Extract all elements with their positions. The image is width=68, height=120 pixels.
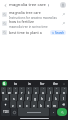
staticText: w: [8, 90, 11, 94]
button[interactable]: .: [50, 108, 56, 116]
button[interactable]: Space: [18, 108, 49, 116]
button[interactable]: a: [2, 94, 9, 101]
staticText: f: [27, 96, 29, 100]
staticText: .: [53, 110, 54, 114]
button[interactable]: Account: [60, 2, 66, 8]
staticText: c: [26, 103, 28, 107]
staticText: G: [3, 82, 6, 86]
staticText: j: [49, 96, 50, 100]
staticText: q: [2, 90, 5, 94]
button[interactable]: the: [49, 80, 62, 87]
staticText: 9: [56, 87, 58, 90]
button[interactable]: for: [36, 80, 49, 87]
button[interactable]: how to fertilize: [0, 19, 68, 28]
button[interactable]: ?123: [1, 108, 10, 116]
staticText: the: [53, 82, 58, 86]
staticText: Search: [55, 31, 64, 35]
button[interactable]: f: [25, 94, 31, 101]
staticText: magnolia tree in spring time: [9, 25, 48, 28]
button[interactable]: z: [10, 101, 16, 108]
button[interactable]: Search: [50, 30, 66, 35]
button[interactable]: 9: [54, 87, 60, 94]
button[interactable]: best time to plant a magnolia: [0, 28, 68, 36]
staticText: a: [5, 96, 7, 100]
button[interactable]: 7: [40, 87, 46, 94]
button[interactable]: Back: [2, 1, 58, 9]
button[interactable]: 0: [61, 87, 67, 94]
button[interactable]: 3: [13, 87, 18, 94]
button[interactable]: l: [60, 94, 66, 101]
staticText: m: [53, 103, 57, 107]
staticText: z: [12, 103, 14, 107]
staticText: best time to plant a magnolia: [9, 30, 48, 35]
staticText: t: [28, 90, 30, 94]
staticText: how to fertilize: [9, 19, 35, 24]
button[interactable]: Backspace: [59, 101, 67, 108]
button[interactable]: 1: [1, 87, 6, 94]
staticText: x: [19, 103, 21, 107]
staticText: 5: [28, 87, 30, 90]
button[interactable]: h: [39, 94, 45, 101]
button[interactable]: in: [23, 80, 36, 87]
button[interactable]: b: [38, 101, 44, 108]
staticText: k: [55, 96, 57, 100]
staticText: i: [50, 90, 51, 94]
button[interactable]: 4: [19, 87, 25, 94]
staticText: s: [13, 96, 15, 100]
button[interactable]: magnolia tree care: [0, 10, 68, 19]
button[interactable]: x: [17, 101, 23, 108]
staticText: h: [41, 96, 44, 100]
staticText: magnolia tree care: [9, 2, 46, 8]
staticText: p: [63, 90, 66, 94]
staticText: v: [33, 103, 35, 107]
button[interactable]: 8: [47, 87, 53, 94]
staticText: b: [40, 103, 43, 107]
button[interactable]: 6: [33, 87, 39, 94]
button[interactable]: More suggestions: [62, 82, 66, 86]
staticText: d: [20, 96, 23, 100]
button[interactable]: 2: [7, 87, 12, 94]
staticText: u: [42, 90, 45, 94]
staticText: 0: [64, 87, 66, 90]
staticText: Instructions for growing magnolias: [9, 16, 57, 19]
button[interactable]: to: [9, 80, 23, 87]
button[interactable]: 5: [26, 87, 32, 94]
staticText: o: [56, 90, 58, 94]
staticText: for: [40, 82, 45, 86]
staticText: ?123: [3, 110, 9, 114]
button[interactable]: Google: [2, 81, 7, 86]
button[interactable]: g: [32, 94, 38, 101]
button[interactable]: Shift: [1, 101, 9, 108]
staticText: 8: [49, 87, 51, 90]
staticText: magnolia tree care: [9, 10, 41, 15]
button[interactable]: m: [52, 101, 58, 108]
staticText: 1: [3, 87, 5, 90]
button[interactable]: Search: [57, 108, 67, 116]
button[interactable]: d: [18, 94, 24, 101]
staticText: l: [63, 96, 64, 100]
button[interactable]: j: [46, 94, 52, 101]
button[interactable]: Emoji: [11, 108, 17, 116]
staticText: r: [21, 90, 23, 94]
staticText: e: [15, 90, 17, 94]
button[interactable]: c: [24, 101, 30, 108]
staticText: to: [14, 82, 18, 86]
button[interactable]: n: [45, 101, 51, 108]
other: Voice search: [47, 4, 50, 7]
staticText: g: [34, 96, 37, 100]
staticText: 6: [35, 87, 37, 90]
button[interactable]: Insert suggestion: [61, 21, 66, 26]
staticText: 4: [21, 87, 23, 90]
staticText: in: [28, 82, 31, 86]
staticText: 2: [9, 87, 11, 90]
button[interactable]: k: [53, 94, 59, 101]
button[interactable]: Insert suggestion: [61, 12, 66, 17]
other: Back: [4, 4, 7, 7]
button[interactable]: s: [10, 94, 17, 101]
staticText: n: [47, 103, 50, 107]
button[interactable]: v: [31, 101, 37, 108]
staticText: 3: [15, 87, 17, 90]
staticText: y: [35, 90, 37, 94]
staticText: 7: [43, 87, 45, 90]
